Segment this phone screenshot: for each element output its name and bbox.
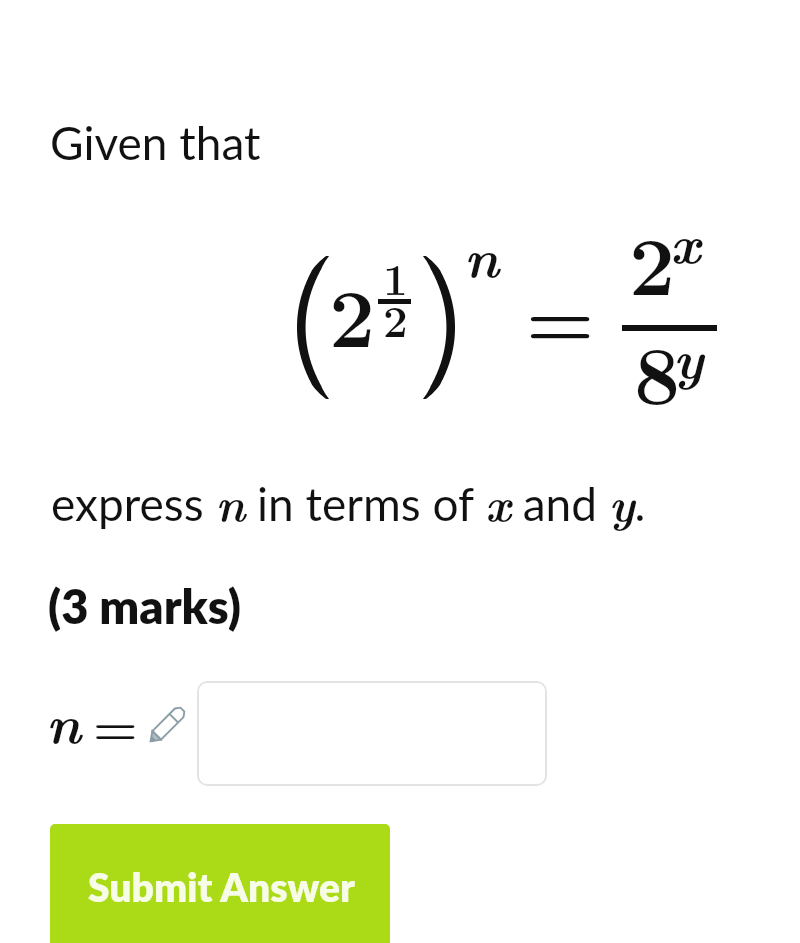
staticText: (3 marks) bbox=[48, 578, 241, 634]
staticText: Submit Answer bbox=[88, 864, 355, 911]
staticText: n bbox=[464, 215, 500, 294]
staticText: 2 bbox=[329, 254, 376, 371]
staticText: = bbox=[526, 258, 595, 369]
button[interactable]: Answer input field bbox=[197, 681, 547, 786]
button[interactable]: Edit answer bbox=[144, 703, 189, 748]
staticText: = bbox=[93, 687, 138, 760]
staticText: 2 bbox=[383, 287, 408, 350]
staticText: x bbox=[670, 201, 701, 280]
staticText: 8 bbox=[634, 311, 681, 428]
staticText: y bbox=[673, 316, 704, 395]
staticText: Given that bbox=[50, 115, 261, 170]
button[interactable]: Submit Answer bbox=[50, 824, 390, 943]
staticText: 1 bbox=[383, 245, 408, 308]
staticText: n bbox=[46, 681, 82, 760]
staticText: 2 bbox=[629, 202, 676, 319]
staticText: express n in terms of x and y. bbox=[51, 468, 646, 535]
